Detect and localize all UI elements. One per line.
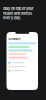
staticText: Summary — [8, 37, 21, 41]
staticText: Stay on top of your health and fitness e… — [3, 6, 33, 20]
